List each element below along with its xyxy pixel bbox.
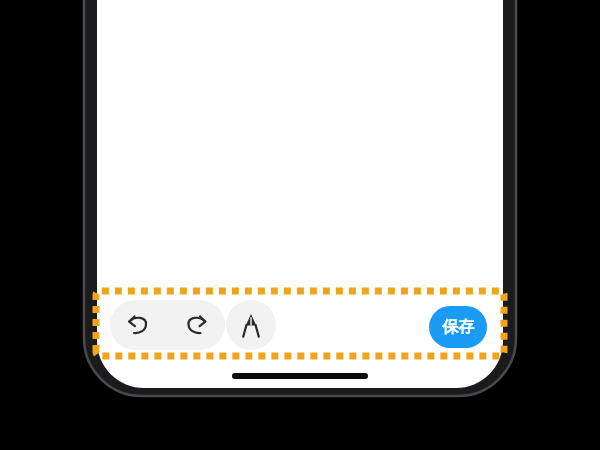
button[interactable]: Pen tool (226, 300, 276, 350)
button[interactable]: 保存 (429, 306, 487, 348)
button[interactable]: Redo (167, 300, 225, 350)
staticText: 保存 (442, 317, 474, 337)
button[interactable]: Undo (110, 300, 167, 350)
